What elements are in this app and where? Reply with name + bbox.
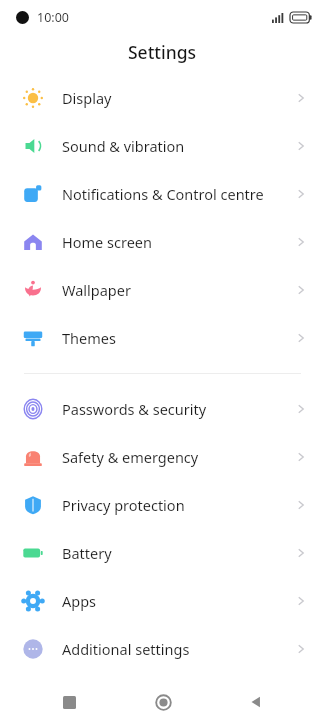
button[interactable]: Safety & emergency (0, 433, 325, 481)
button[interactable]: Additional settings (0, 625, 325, 673)
staticText: Battery (62, 543, 112, 563)
staticText: Home screen (62, 232, 152, 252)
button[interactable]: Passwords & security (0, 385, 325, 433)
button[interactable]: Home (139, 680, 187, 724)
staticText: Wallpaper (62, 280, 131, 300)
staticText: Notifications & Control centre (62, 184, 264, 204)
button[interactable]: Battery (0, 529, 325, 577)
button[interactable]: Recents (45, 680, 93, 724)
staticText: Safety & emergency (62, 447, 199, 467)
staticText: Themes (62, 328, 116, 348)
staticText: 10:00 (37, 9, 69, 26)
button[interactable]: Sound & vibration (0, 122, 325, 170)
staticText: Additional settings (62, 639, 190, 659)
button[interactable]: Display (0, 74, 325, 122)
button[interactable]: Wallpaper (0, 266, 325, 314)
staticText: Privacy protection (62, 495, 185, 515)
staticText: Settings (128, 40, 197, 64)
staticText: Display (62, 88, 112, 108)
button[interactable]: Privacy protection (0, 481, 325, 529)
button[interactable]: Home screen (0, 218, 325, 266)
staticText: Sound & vibration (62, 136, 185, 156)
button[interactable]: Themes (0, 314, 325, 362)
staticText: Apps (62, 591, 97, 611)
staticText: Passwords & security (62, 399, 207, 419)
button[interactable]: Back (232, 680, 280, 724)
button[interactable]: Apps (0, 577, 325, 625)
button[interactable]: Notifications & Control centre (0, 170, 325, 218)
